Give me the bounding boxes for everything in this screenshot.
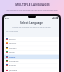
button[interactable]: Russian — [4, 63, 59, 67]
staticText: 9:41 — [5, 17, 9, 20]
staticText: English — [9, 38, 16, 41]
button[interactable]: English — [4, 37, 59, 41]
staticText: Spanish — [9, 42, 17, 45]
button[interactable]: Spanish — [4, 41, 59, 45]
button[interactable]: Italian — [4, 50, 59, 54]
staticText: Italian — [9, 51, 15, 54]
staticText: German — [9, 47, 17, 50]
button[interactable]: Japanese — [4, 68, 59, 72]
staticText: French — [9, 56, 16, 59]
staticText: Portugues — [9, 60, 19, 63]
staticText: Select Language — [4, 21, 59, 25]
staticText: Use the app in the language you are most… — [6, 9, 58, 12]
button[interactable]: German — [4, 46, 59, 50]
staticText: MULTIPLE LANGUAGES — [15, 3, 50, 7]
button[interactable]: French — [4, 55, 59, 59]
button[interactable]: Portugues — [4, 59, 59, 63]
other: Status icons — [52, 17, 58, 19]
staticText: Russian — [9, 64, 17, 67]
staticText: ALL LANGUAGES — [6, 30, 19, 32]
staticText: Choose the language you want to use in t… — [7, 26, 56, 28]
staticText: Japanese — [9, 69, 18, 72]
